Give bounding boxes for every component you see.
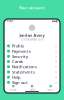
button[interactable]: Security <box>4 54 60 59</box>
button[interactable]: Notifications <box>4 64 60 69</box>
staticText: > <box>55 43 57 49</box>
button[interactable]: Profile <box>4 43 60 49</box>
staticText: Sign out <box>12 80 28 85</box>
button[interactable]: Sign out <box>4 80 60 85</box>
staticText: > <box>55 80 57 85</box>
staticText: Your account <box>19 5 45 10</box>
staticText: > <box>55 54 57 59</box>
button[interactable]: Home <box>4 85 23 91</box>
staticText: Security <box>12 54 28 59</box>
staticText: > <box>55 59 57 64</box>
staticText: Home <box>9 88 17 91</box>
button[interactable]: Help <box>4 75 60 80</box>
staticText: ▪▪▮ <box>52 19 57 22</box>
staticText: > <box>55 69 57 75</box>
staticText: Profile <box>12 43 24 49</box>
staticText: > <box>55 64 57 69</box>
staticText: Statements <box>12 69 35 75</box>
staticText: Payments <box>12 48 31 54</box>
button[interactable]: Cards <box>4 59 60 64</box>
staticText: jordan@mail.com <box>21 38 43 41</box>
staticText: 9:41 <box>7 19 14 23</box>
button[interactable]: Statements <box>4 69 60 75</box>
staticText: More <box>47 88 54 91</box>
staticText: Notifications <box>12 64 37 69</box>
staticText: > <box>55 48 57 54</box>
staticText: Cards <box>12 59 23 64</box>
button[interactable]: Cards <box>23 85 41 91</box>
staticText: Help <box>12 74 20 80</box>
staticText: Jordan Avery <box>19 32 44 38</box>
staticText: Cards <box>28 88 35 91</box>
button[interactable]: Payments <box>4 49 60 54</box>
button[interactable]: More <box>41 85 60 91</box>
staticText: > <box>55 74 57 80</box>
